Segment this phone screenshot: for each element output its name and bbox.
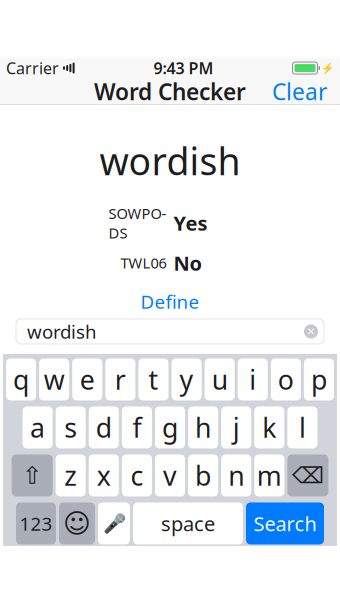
staticText: Clear — [272, 76, 327, 107]
button[interactable]: l — [287, 406, 317, 448]
button[interactable]: g — [155, 406, 185, 448]
button[interactable]: f — [122, 406, 152, 448]
staticText: j — [233, 410, 240, 445]
button[interactable]: p — [304, 358, 334, 400]
staticText: 🎤 — [102, 513, 125, 534]
staticText: Word Checker — [94, 76, 246, 107]
staticText: w — [44, 362, 65, 397]
staticText: 9:43 PM — [153, 57, 213, 79]
staticText: d — [96, 410, 112, 445]
staticText: y — [180, 362, 194, 397]
staticText: No — [173, 250, 202, 276]
staticText: h — [195, 410, 211, 445]
button[interactable]: u — [205, 358, 235, 400]
button[interactable]: h — [188, 406, 218, 448]
button[interactable]: t — [138, 358, 168, 400]
button[interactable]: space — [133, 502, 243, 544]
button[interactable]: Dictate — [98, 502, 130, 544]
staticText: space — [161, 510, 215, 537]
staticText: g — [162, 410, 178, 445]
button[interactable]: Shift — [12, 454, 53, 496]
button[interactable]: d — [89, 406, 119, 448]
button[interactable]: c — [122, 454, 152, 496]
staticText: Search — [253, 510, 316, 537]
staticText: ✕ — [306, 325, 315, 337]
button[interactable]: Delete — [287, 454, 328, 496]
staticText: c — [130, 458, 143, 493]
staticText: n — [228, 458, 244, 493]
staticText: Yes — [173, 210, 207, 236]
button[interactable]: x — [89, 454, 119, 496]
staticText: SOWPODS — [108, 204, 166, 243]
button[interactable]: Search — [246, 502, 324, 544]
button[interactable]: y — [171, 358, 202, 400]
staticText: f — [132, 410, 141, 445]
staticText: m — [257, 458, 282, 493]
staticText: l — [299, 410, 306, 445]
button[interactable]: Clear — [263, 71, 336, 112]
staticText: ☺ — [63, 508, 91, 539]
button[interactable]: z — [56, 454, 86, 496]
staticText: e — [80, 362, 95, 397]
staticText: 123 — [19, 511, 52, 536]
staticText: Carrier — [6, 57, 59, 79]
staticText: s — [64, 410, 77, 445]
staticText: x — [97, 458, 111, 493]
button[interactable]: Clear text — [298, 319, 324, 344]
staticText: ⇧ — [22, 462, 42, 489]
staticText: a — [30, 410, 45, 445]
staticText: wordish — [27, 319, 97, 344]
button[interactable]: o — [271, 358, 301, 400]
button[interactable]: Numbers — [16, 502, 56, 544]
staticText: z — [64, 458, 77, 493]
button[interactable]: b — [188, 454, 218, 496]
staticText: wordish — [99, 136, 240, 186]
button[interactable]: k — [254, 406, 284, 448]
button[interactable]: r — [105, 358, 135, 400]
staticText: i — [249, 362, 256, 397]
staticText: q — [13, 362, 29, 397]
staticText: TWL06 — [120, 253, 166, 273]
staticText: ⚡ — [321, 62, 334, 74]
staticText: b — [195, 458, 211, 493]
staticText: t — [148, 362, 158, 397]
button[interactable]: s — [56, 406, 86, 448]
staticText: o — [278, 362, 294, 397]
staticText: ⌫ — [292, 463, 324, 488]
button[interactable]: Define — [128, 284, 211, 319]
button[interactable]: j — [221, 406, 251, 448]
button[interactable]: q — [6, 358, 36, 400]
button[interactable]: m — [254, 454, 284, 496]
button[interactable]: n — [221, 454, 251, 496]
staticText: k — [262, 410, 276, 445]
staticText: v — [163, 458, 177, 493]
button[interactable]: Emoji — [59, 502, 95, 544]
button[interactable]: v — [155, 454, 185, 496]
staticText: r — [115, 362, 126, 397]
staticText: Define — [140, 289, 199, 314]
staticText: p — [311, 362, 327, 397]
button[interactable]: w — [39, 358, 69, 400]
button[interactable]: a — [23, 406, 53, 448]
button[interactable]: e — [72, 358, 102, 400]
staticText: u — [212, 362, 228, 397]
button[interactable]: i — [238, 358, 268, 400]
